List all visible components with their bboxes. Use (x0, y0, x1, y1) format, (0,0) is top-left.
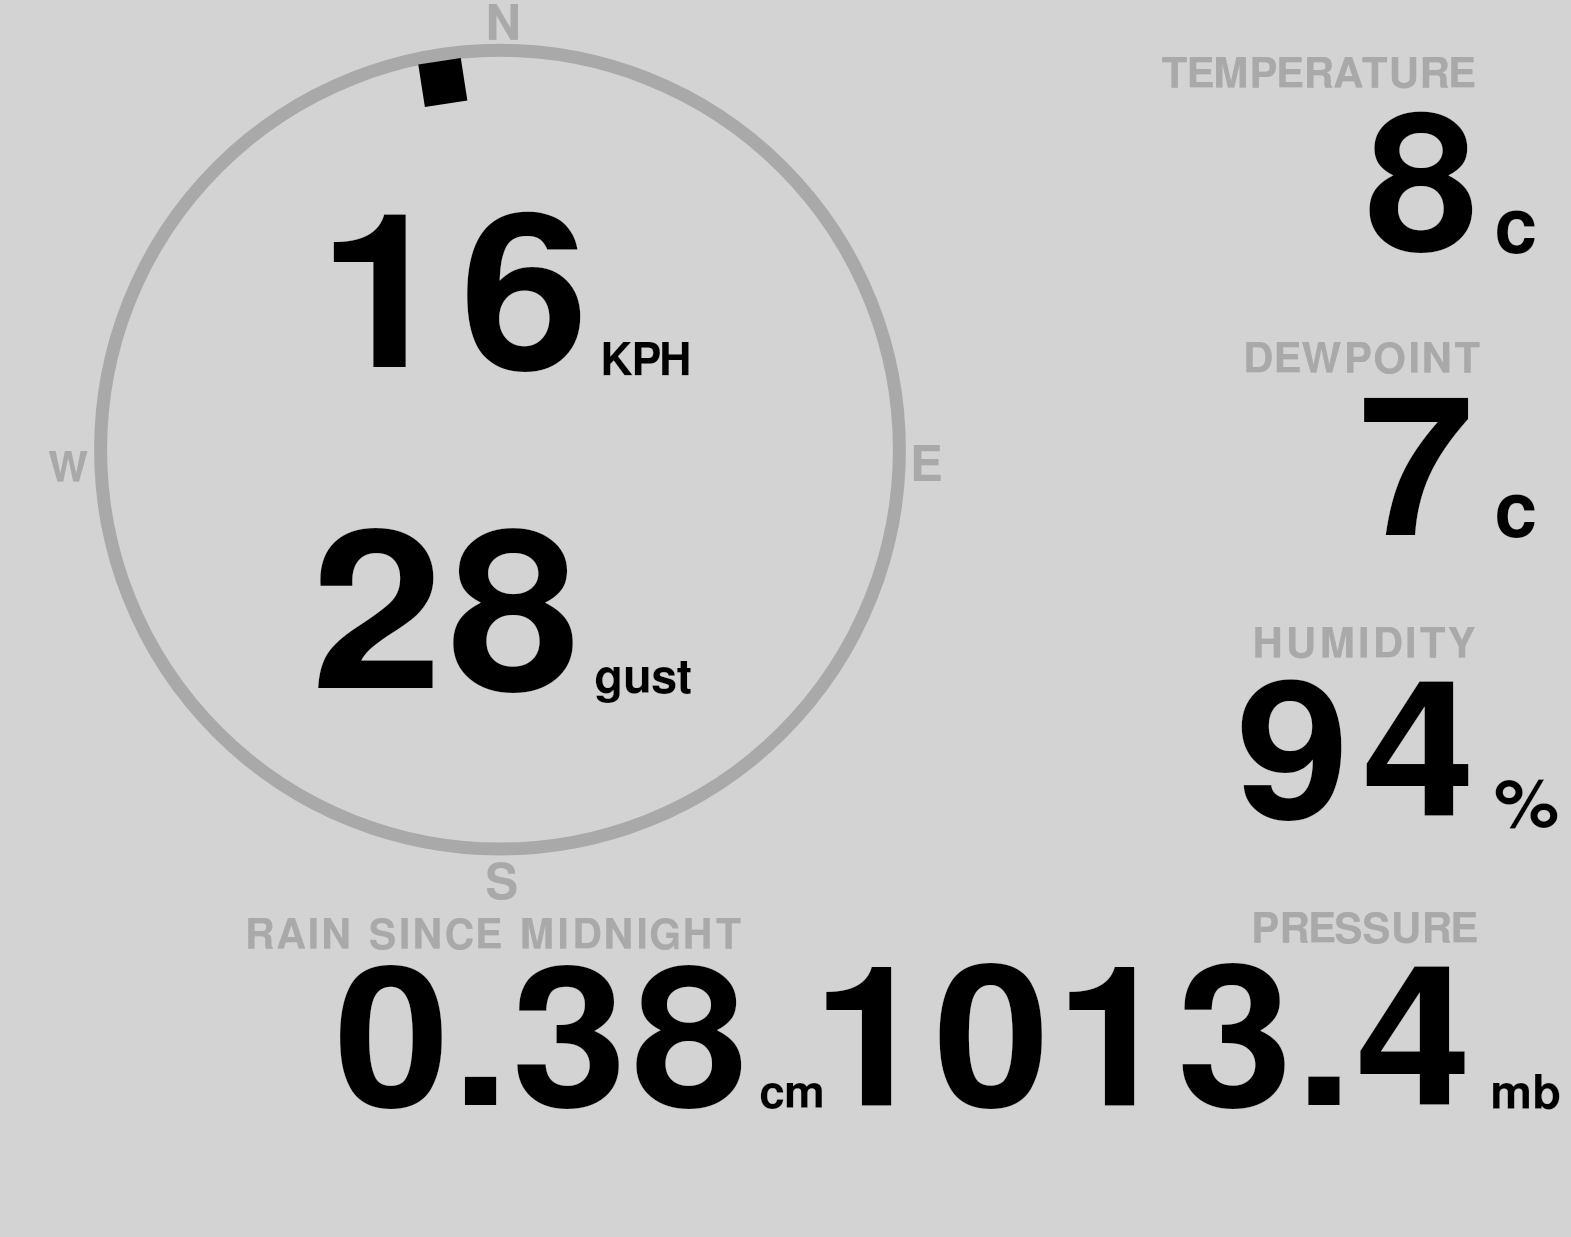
button[interactable]: Wind 16 KPH, gusting 28 (60, 20, 940, 900)
staticText: mb (1490, 1071, 1562, 1118)
button[interactable]: Humidity 94 percent (1150, 615, 1550, 845)
staticText: E (910, 442, 943, 491)
staticText: PRESSURE (1251, 909, 1479, 951)
staticText: % (1494, 773, 1560, 841)
button[interactable]: Pressure 1013.4 mb (810, 900, 1570, 1125)
staticText: KPH (600, 339, 691, 384)
staticText: 1013.4 (812, 950, 1477, 1144)
staticText: c (1494, 474, 1537, 551)
staticText: c (1494, 190, 1537, 267)
staticText: 8 (1365, 98, 1479, 287)
staticText: 94 (1236, 665, 1488, 854)
staticText: gust (594, 655, 693, 702)
staticText: 0.38 (334, 951, 753, 1144)
button[interactable]: Rain since midnight 0.38 cm (240, 900, 800, 1125)
staticText: 7 (1358, 381, 1475, 574)
staticText: W (48, 448, 89, 490)
staticText: DEWPOINT (1243, 339, 1483, 381)
staticText: S (485, 860, 519, 909)
button[interactable]: Temperature 8 degrees C (1150, 45, 1550, 275)
staticText: HUMIDITY (1252, 624, 1478, 666)
staticText: cm (759, 1071, 825, 1117)
staticText: RAIN SINCE MIDNIGHT (245, 916, 745, 957)
staticText: 28 (311, 512, 585, 732)
staticText: N (485, 1, 522, 50)
button[interactable]: Dewpoint 7 degrees C (1150, 330, 1550, 560)
staticText: 16 (318, 195, 602, 410)
staticText: TEMPERATURE (1161, 54, 1476, 96)
